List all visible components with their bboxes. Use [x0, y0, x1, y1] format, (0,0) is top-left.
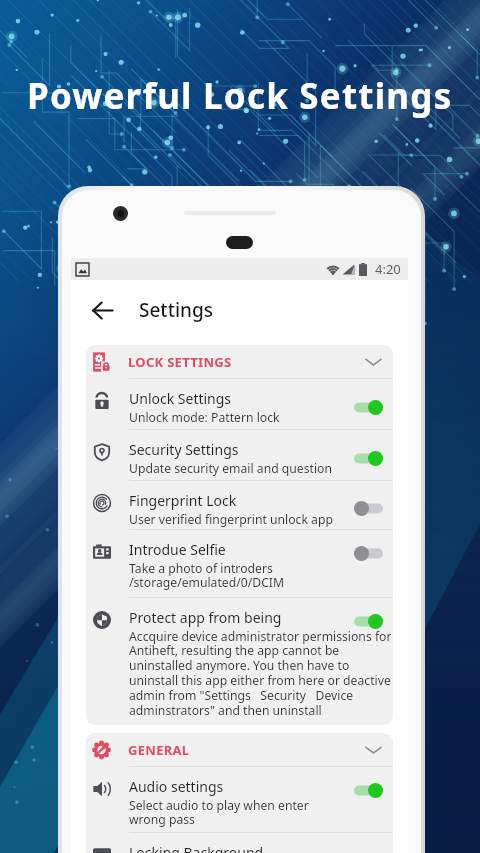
- staticText: User verified fingerprint unlock app: [129, 511, 333, 528]
- button[interactable]: Locking Background: [86, 833, 393, 853]
- button[interactable]: Protect app from being: [86, 598, 393, 725]
- staticText: GENERAL: [128, 741, 190, 759]
- button[interactable]: Unlock Settings: [86, 379, 393, 430]
- staticText: Introdue Selfie: [129, 540, 226, 559]
- staticText: Locking Background: [129, 843, 264, 853]
- staticText: Protect app from being: [129, 608, 282, 627]
- staticText: 4:20: [375, 260, 401, 278]
- staticText: Update security email and question: [129, 460, 333, 477]
- button[interactable]: Fingerprint Lock: [86, 481, 393, 530]
- staticText: LOCK SETTINGS: [128, 353, 232, 371]
- button[interactable]: Security Settings: [86, 430, 393, 481]
- staticText: Fingerprint Lock: [129, 491, 237, 510]
- button[interactable]: Introdue Selfie: [86, 530, 393, 598]
- staticText: Select audio to play when enter wrong pa…: [129, 797, 309, 828]
- staticText: Unlock mode: Pattern lock: [129, 409, 280, 426]
- button[interactable]: Audio settings: [86, 767, 393, 833]
- button[interactable]: GENERAL: [86, 733, 393, 767]
- staticText: Security Settings: [129, 440, 239, 459]
- button[interactable]: Back: [85, 293, 119, 327]
- staticText: Take a photo of introders /storage/emula…: [129, 560, 285, 591]
- staticText: Powerful Lock Settings: [27, 72, 453, 120]
- staticText: Unlock Settings: [129, 389, 232, 408]
- staticText: Accquire device administrator permission…: [129, 628, 391, 719]
- button[interactable]: LOCK SETTINGS: [86, 345, 393, 379]
- staticText: Audio settings: [129, 777, 224, 796]
- staticText: Settings: [139, 297, 213, 323]
